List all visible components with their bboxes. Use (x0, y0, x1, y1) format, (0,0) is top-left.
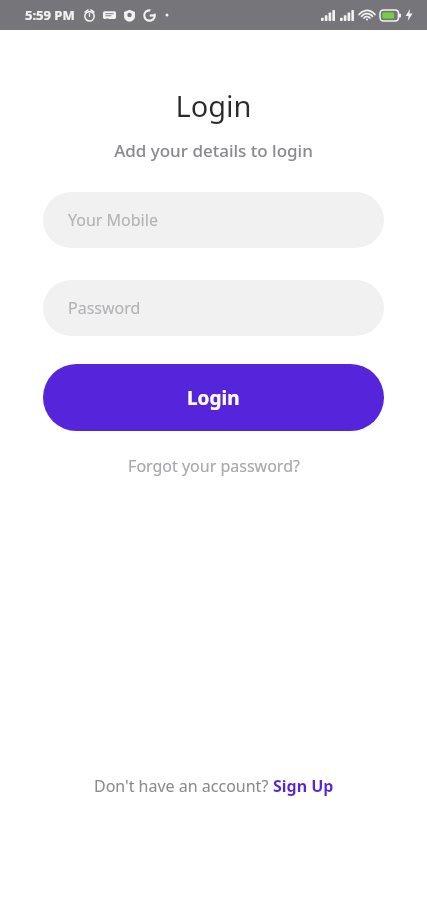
staticText: Login (187, 385, 240, 411)
staticText: Your Mobile (68, 209, 158, 231)
button[interactable]: Forgot your password? (118, 450, 310, 482)
staticText: Add your details to login (0, 139, 427, 162)
staticText: Don't have an account? (94, 775, 273, 797)
button[interactable]: Login (43, 364, 384, 431)
button[interactable]: Password (43, 280, 384, 336)
staticText: Forgot your password? (128, 455, 300, 477)
staticText: Login (0, 86, 427, 125)
staticText: 5:59 PM (25, 6, 75, 24)
staticText: Sign Up (273, 775, 334, 797)
button[interactable]: Your Mobile (43, 192, 384, 248)
staticText: Password (68, 297, 141, 319)
button[interactable]: Sign Up (273, 775, 334, 797)
